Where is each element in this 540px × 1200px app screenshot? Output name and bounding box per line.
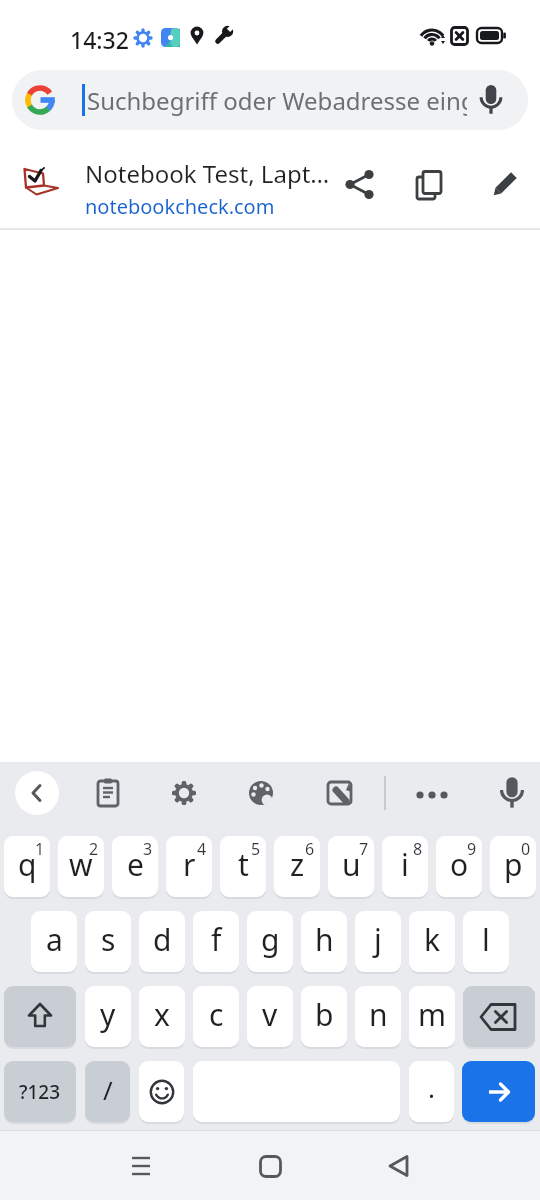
staticText: u <box>342 844 361 885</box>
staticText: 4 <box>197 838 207 860</box>
staticText: l <box>482 919 490 960</box>
staticText: h <box>315 919 334 960</box>
button[interactable] <box>4 986 76 1047</box>
staticText: / <box>103 1072 113 1107</box>
staticText: p <box>504 844 523 885</box>
staticText: 3 <box>143 838 153 860</box>
staticText: 6 <box>305 838 315 860</box>
button[interactable]: o <box>436 836 482 897</box>
staticText: k <box>424 919 441 960</box>
staticText: 5 <box>251 838 261 860</box>
staticText: i <box>401 844 409 885</box>
staticText: ?123 <box>19 1079 61 1105</box>
button[interactable]: f <box>193 911 239 972</box>
staticText: 14:32 <box>70 24 129 55</box>
staticText: 0 <box>521 838 531 860</box>
button[interactable]: . <box>409 1061 454 1122</box>
staticText: c <box>209 994 224 1035</box>
staticText: d <box>153 919 172 960</box>
button[interactable] <box>463 986 535 1047</box>
button[interactable]: b <box>301 986 347 1047</box>
button[interactable]: h <box>301 911 347 972</box>
staticText: x <box>154 994 170 1035</box>
button[interactable]: j <box>355 911 401 972</box>
button[interactable]: l <box>463 911 509 972</box>
button[interactable] <box>370 1140 426 1192</box>
button[interactable]: n <box>355 986 401 1047</box>
button[interactable]: q <box>4 836 50 897</box>
staticText: a <box>46 919 63 960</box>
staticText: b <box>315 994 334 1035</box>
staticText: r <box>183 844 196 885</box>
button[interactable]: t <box>220 836 266 897</box>
staticText: n <box>369 994 388 1035</box>
button[interactable]: r <box>166 836 212 897</box>
button[interactable]: ?123 <box>4 1061 76 1122</box>
staticText: 9 <box>467 838 477 860</box>
staticText: 7 <box>359 838 369 860</box>
staticText: z <box>290 844 305 885</box>
button[interactable]: p <box>490 836 536 897</box>
button[interactable]: Suchbegriff oder Webadresse einge <box>12 70 528 130</box>
button[interactable]: m <box>409 986 455 1047</box>
staticText: 2 <box>89 838 99 860</box>
staticText: 1 <box>35 838 45 860</box>
button[interactable]: Notebook Test, Lapt… <box>0 150 540 222</box>
staticText: j <box>374 919 382 960</box>
button[interactable]: / <box>85 1061 130 1122</box>
staticText: notebookcheck.com <box>85 193 275 220</box>
button[interactable]: x <box>139 986 185 1047</box>
button[interactable]: y <box>85 986 131 1047</box>
button[interactable]: i <box>382 836 428 897</box>
button[interactable]: d <box>139 911 185 972</box>
button[interactable] <box>114 1140 170 1192</box>
button[interactable]: w <box>58 836 104 897</box>
button[interactable] <box>15 771 59 815</box>
button[interactable]: a <box>31 911 77 972</box>
staticText: 8 <box>413 838 423 860</box>
staticText: q <box>18 844 37 885</box>
button[interactable]: u <box>328 836 374 897</box>
button[interactable]: e <box>112 836 158 897</box>
staticText: y <box>100 994 116 1035</box>
button[interactable]: k <box>409 911 455 972</box>
staticText: Notebook Test, Lapt… <box>85 157 330 190</box>
staticText: t <box>238 844 249 885</box>
staticText: o <box>450 844 469 885</box>
staticText: f <box>211 919 222 960</box>
staticText: Suchbegriff oder Webadresse einge <box>87 84 467 117</box>
button[interactable]: z <box>274 836 320 897</box>
button[interactable]: v <box>247 986 293 1047</box>
staticText: v <box>262 994 278 1035</box>
staticText: s <box>101 919 116 960</box>
staticText: w <box>69 844 93 885</box>
staticText: g <box>261 919 280 960</box>
button[interactable] <box>139 1061 184 1122</box>
button[interactable]: c <box>193 986 239 1047</box>
button[interactable]: g <box>247 911 293 972</box>
staticText: . <box>428 1070 435 1105</box>
staticText: e <box>127 844 144 885</box>
button[interactable] <box>462 1061 535 1122</box>
button[interactable]: s <box>85 911 131 972</box>
button[interactable] <box>242 1140 298 1192</box>
staticText: m <box>418 994 447 1035</box>
